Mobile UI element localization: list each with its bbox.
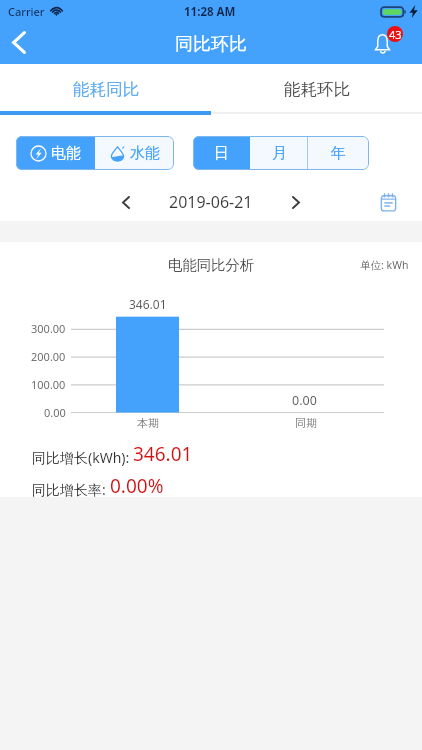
staticText: 同比增长(kWh): [32,448,133,467]
staticText: 水能 [130,144,160,163]
staticText: 电能同比分析 [168,256,255,274]
staticText: 300.00 [31,321,66,336]
staticText: Carrier [8,4,45,19]
staticText: 能耗环比 [284,79,350,100]
button[interactable]: 能耗环比 [211,64,422,111]
button[interactable]: 电能 [16,136,95,170]
staticText: 43 [389,27,402,42]
staticText: 346.01 [129,296,167,312]
staticText: 0.00 [292,392,317,409]
staticText: 同比增长率: [32,480,110,499]
button[interactable]: 年 [308,136,369,170]
button[interactable]: Select date [371,185,405,219]
staticText: 单位: kWh [360,258,409,272]
staticText: 日 [214,144,229,163]
button[interactable]: 能耗同比 [0,64,211,111]
staticText: 0.00% [110,473,164,499]
staticText: 346.01 [133,441,193,467]
staticText: 100.00 [31,377,66,392]
staticText: 11:28 AM [184,4,236,20]
button[interactable]: 日 [193,136,250,170]
staticText: 本期 [137,416,159,430]
staticText: 电能 [51,144,81,163]
staticText: 月 [272,144,287,163]
staticText: 同期 [295,416,317,430]
staticText: 0.00 [44,405,66,420]
button[interactable]: Back [0,22,40,64]
button[interactable]: 水能 [95,136,174,170]
button[interactable]: Notifications [365,25,399,59]
button[interactable]: 月 [250,136,308,170]
staticText: 同比环比 [175,33,247,56]
button[interactable]: Next day [279,185,313,219]
staticText: 能耗同比 [73,79,139,100]
button[interactable]: Previous day [109,185,143,219]
staticText: 200.00 [31,349,66,364]
staticText: 年 [331,144,346,163]
staticText: 2019-06-21 [169,191,253,213]
